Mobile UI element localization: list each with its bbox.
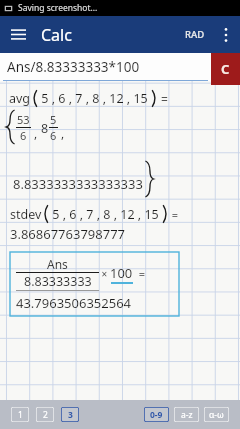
staticText: RAD [185, 28, 205, 41]
button[interactable]: 53 [0, 110, 240, 144]
staticText: , [58, 125, 65, 141]
staticText: 1 [18, 409, 23, 421]
staticText: 3 [68, 409, 73, 421]
button[interactable]: 2 [36, 407, 54, 422]
staticText: 5 , 6 , 7 , 8 , 12 , 15 [49, 206, 162, 223]
button[interactable]: α-ω [204, 407, 229, 422]
staticText: , [31, 125, 41, 141]
staticText: 6 [20, 128, 27, 143]
button[interactable]: Ans [10, 252, 179, 316]
staticText: a-z [181, 409, 193, 421]
staticText: 43.7963506352564 [16, 294, 132, 312]
button[interactable]: stdev [0, 204, 240, 224]
staticText: 2 [43, 409, 48, 421]
staticText: 100 [110, 264, 133, 282]
button[interactable]: RAD [178, 19, 212, 50]
button[interactable]: Ans/8.83333333*100 [0, 53, 211, 80]
button[interactable]: More options [212, 16, 240, 53]
button[interactable]: 0-9 [144, 407, 169, 422]
staticText: Saving screenshot... [18, 2, 98, 14]
button[interactable]: Open navigation drawer [0, 16, 37, 53]
staticText: 8.8333333333333333 [13, 175, 143, 193]
button[interactable]: C [211, 53, 240, 85]
staticText: 8 [41, 120, 49, 137]
button[interactable]: a-z [174, 407, 199, 422]
button[interactable]: 8.8333333333333333 [0, 157, 240, 193]
button[interactable]: avg [0, 89, 240, 108]
staticText: Ans/8.83333333*100 [7, 58, 140, 76]
staticText: stdev [10, 206, 42, 223]
button[interactable]: 1 [11, 407, 29, 422]
staticText: = [158, 91, 168, 107]
staticText: 53 [17, 112, 30, 127]
button[interactable]: 3 [61, 407, 79, 422]
staticText: × [99, 267, 110, 281]
staticText: 8.83333333 [24, 273, 92, 290]
staticText: avg [9, 90, 31, 107]
staticText: Ans [47, 256, 68, 272]
staticText: = [169, 207, 179, 222]
staticText: α-ω [209, 409, 224, 421]
staticText: 5 , 6 , 7 , 8 , 12 , 15 [38, 90, 151, 107]
staticText: 3.86867763798777 [10, 225, 126, 243]
staticText: 5 [50, 112, 57, 127]
staticText: Calc [41, 24, 72, 46]
staticText: 0-9 [150, 409, 163, 421]
staticText: = [133, 266, 146, 281]
staticText: 6 [50, 128, 57, 143]
staticText: C [221, 60, 230, 78]
